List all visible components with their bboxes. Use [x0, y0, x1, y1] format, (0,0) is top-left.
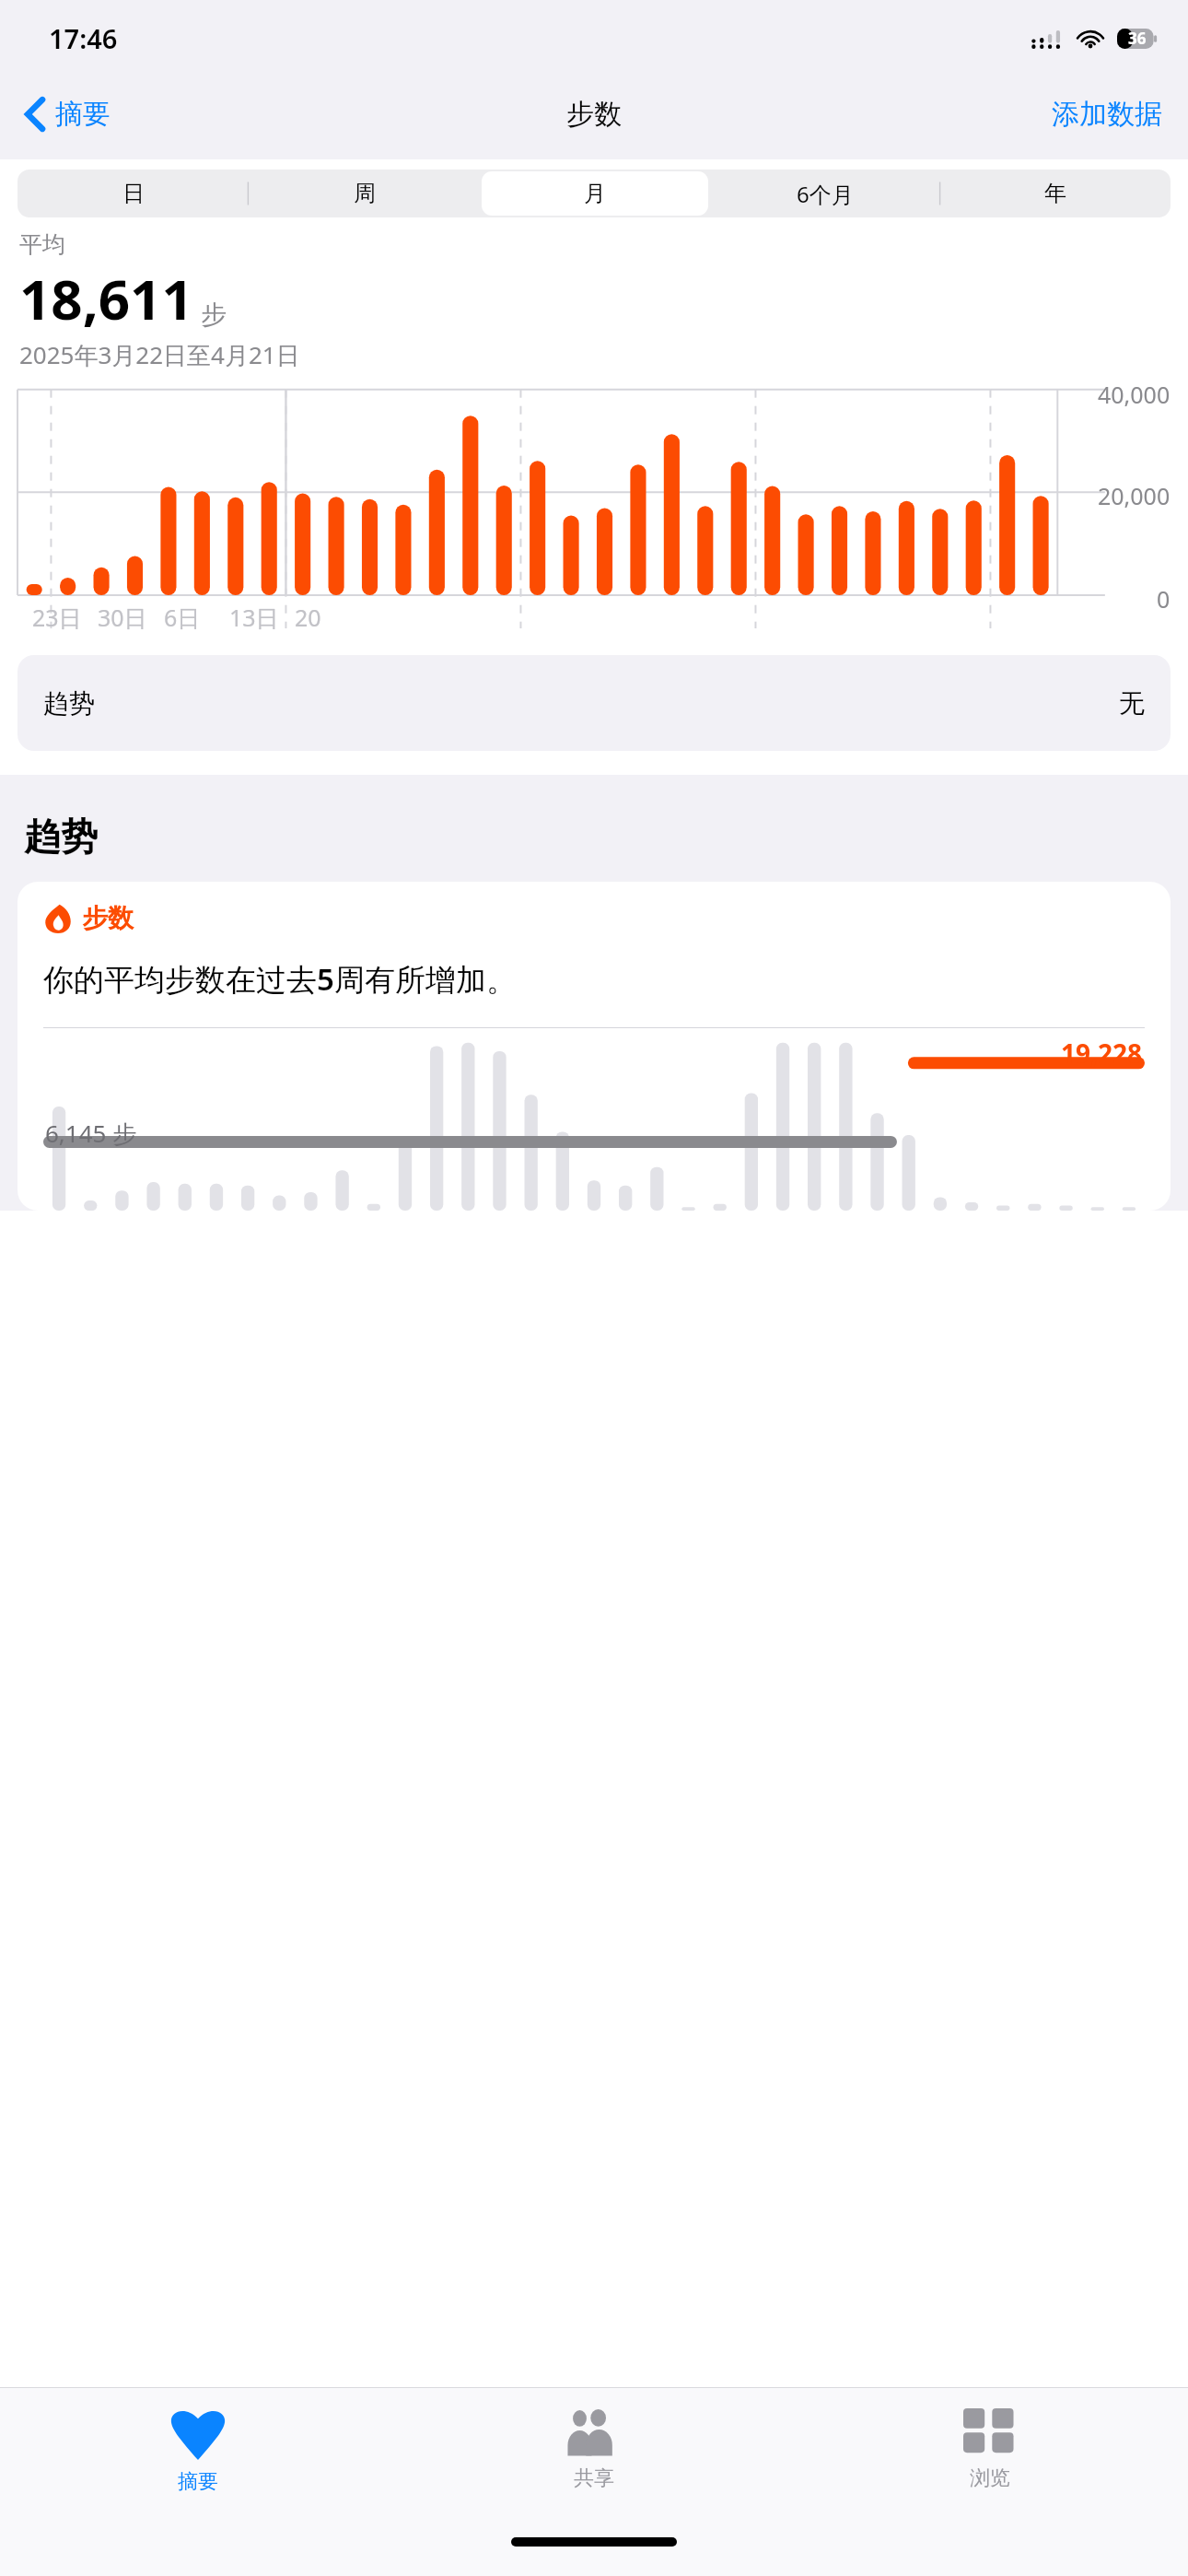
other: 浏览 [963, 2408, 1017, 2456]
staticText: 6日 [164, 602, 201, 633]
staticText: 步数 [566, 97, 622, 132]
staticText: 趋势 [24, 814, 98, 860]
staticText: 23日 [32, 602, 82, 633]
staticText: 趋势 [43, 687, 95, 720]
staticText: 20 [295, 602, 321, 633]
staticText: 13日 [229, 602, 279, 633]
button[interactable]: 摘要 [26, 97, 111, 132]
button[interactable]: 年 [942, 171, 1169, 216]
button[interactable]: 步数 [17, 882, 1171, 1211]
staticText: 无 [1119, 687, 1145, 720]
staticText: 你的平均步数在过去5周有所增加。 [43, 958, 517, 1000]
staticText: 19,228 [1061, 1036, 1143, 1071]
button[interactable]: 日 [19, 171, 247, 216]
button[interactable]: 趋势 [17, 655, 1171, 751]
staticText: 步数 [82, 902, 134, 934]
staticText: 18,611 [19, 261, 193, 336]
staticText: 40,000 [1098, 379, 1171, 410]
staticText: 摘要 [178, 2469, 218, 2495]
button[interactable]: 添加数据 [1052, 97, 1162, 132]
button[interactable]: 共享 [396, 2388, 792, 2524]
staticText: 36 [1128, 28, 1147, 49]
staticText: 日 [122, 180, 145, 207]
staticText: 月 [584, 180, 606, 207]
staticText: 0 [1157, 583, 1171, 615]
staticText: 20,000 [1098, 480, 1171, 511]
staticText: 周 [354, 180, 376, 207]
staticText: 17:46 [49, 20, 118, 56]
staticText: 摘要 [55, 97, 111, 132]
other: 共享 [565, 2408, 623, 2456]
button[interactable]: 周 [250, 171, 478, 216]
staticText: 6,145 步 [45, 1117, 137, 1150]
staticText: 6个月 [797, 179, 854, 209]
staticText: 浏览 [970, 2465, 1010, 2491]
staticText: 2025年3月22日至4月21日 [19, 338, 300, 371]
staticText: 30日 [98, 602, 147, 633]
staticText: 年 [1044, 180, 1066, 207]
button[interactable]: 月 [482, 171, 708, 216]
staticText: 步 [201, 299, 227, 331]
staticText: 平均 [19, 230, 65, 259]
button[interactable]: 浏览 [792, 2388, 1188, 2524]
button[interactable]: 摘要 [0, 2388, 396, 2524]
staticText: 共享 [574, 2465, 614, 2491]
other: 摘要 [169, 2408, 227, 2460]
button[interactable]: 6个月 [712, 171, 938, 216]
staticText: 添加数据 [1052, 97, 1162, 132]
